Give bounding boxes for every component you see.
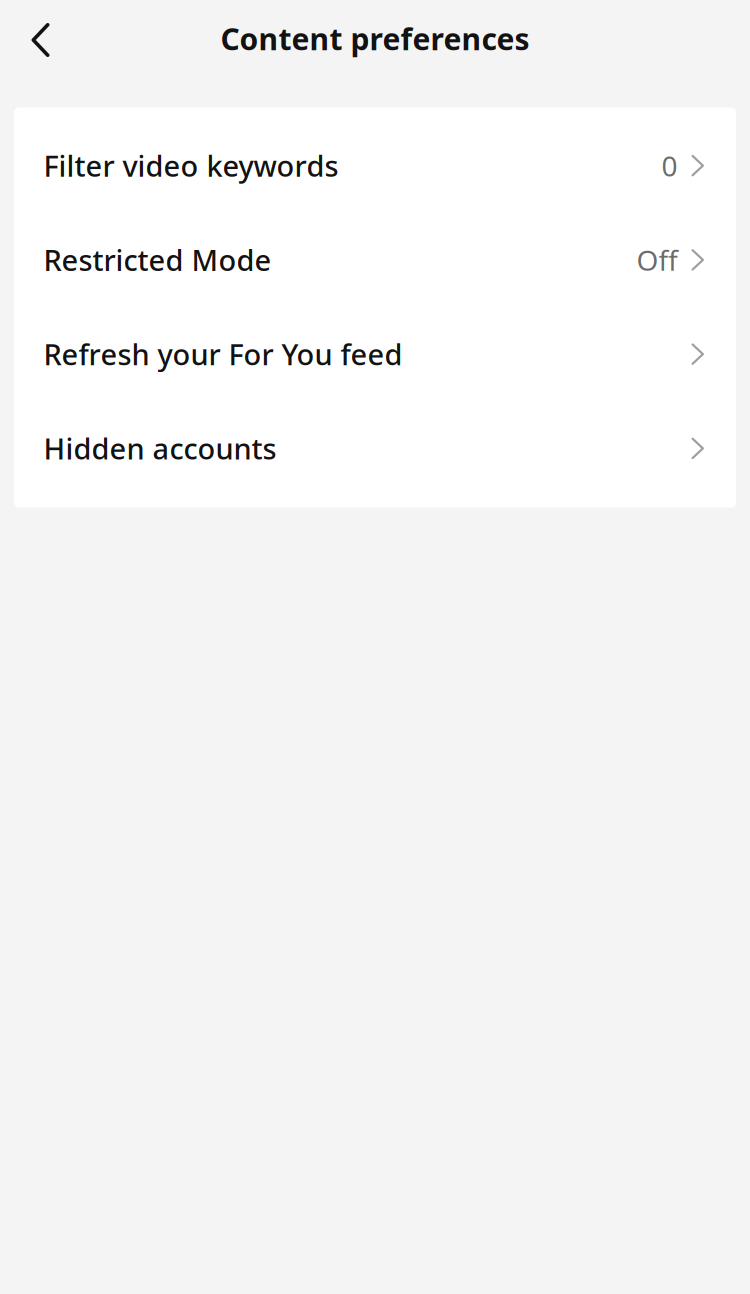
staticText: 0	[661, 147, 677, 185]
staticText: Content preferences	[220, 18, 529, 59]
staticText: Refresh your For You feed	[43, 334, 402, 374]
button[interactable]: Restricted Mode	[14, 213, 736, 307]
button[interactable]: Back	[7, 7, 73, 73]
button[interactable]: Hidden accounts	[14, 401, 736, 495]
staticText: Hidden accounts	[43, 429, 276, 468]
staticText: Off	[636, 241, 677, 279]
button[interactable]: Filter video keywords	[14, 118, 736, 213]
staticText: Filter video keywords	[43, 146, 338, 185]
button[interactable]: Refresh your For You feed	[14, 307, 736, 401]
staticText: Restricted Mode	[43, 240, 271, 280]
